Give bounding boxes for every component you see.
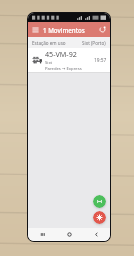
button[interactable]: Add movement: [93, 211, 106, 224]
staticText: 1 Movimentos: [43, 26, 95, 34]
staticText: 45-VM-92: [45, 49, 77, 59]
button[interactable]: Home: [56, 228, 83, 241]
button[interactable]: Open navigation menu: [28, 22, 43, 37]
staticText: 19:57: [94, 57, 107, 64]
staticText: Sixt: [45, 60, 53, 66]
button[interactable]: 45-VM-92: [28, 48, 110, 73]
staticText: Estação em uso: [32, 40, 66, 46]
button[interactable]: Refresh: [95, 22, 110, 37]
staticText: Paredes → Express: [45, 66, 82, 72]
staticText: Sixt (Porto): [82, 40, 106, 46]
button[interactable]: Back: [83, 228, 110, 241]
button[interactable]: Recent apps: [28, 228, 56, 241]
button[interactable]: Start movement: [93, 195, 106, 208]
